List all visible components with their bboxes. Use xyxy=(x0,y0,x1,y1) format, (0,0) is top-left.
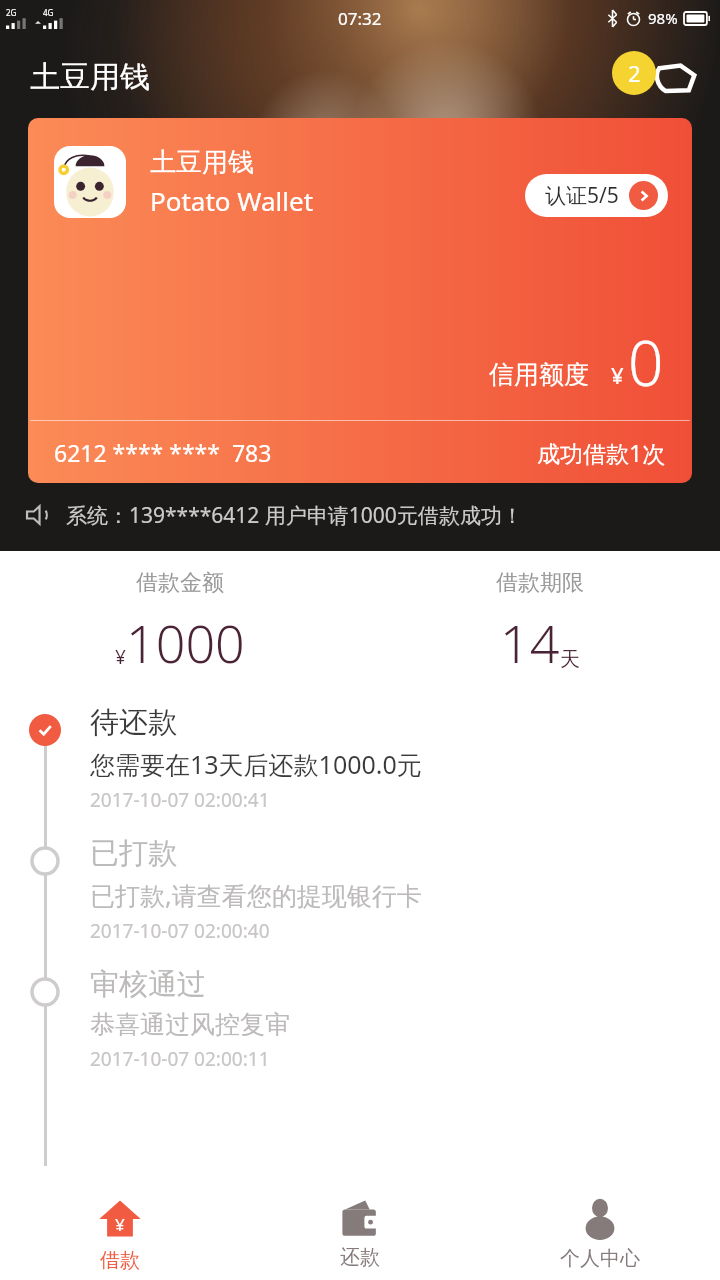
staticText: 2G xyxy=(6,7,17,18)
staticText: 2 xyxy=(628,58,641,88)
staticText: 恭喜通过风控复审 xyxy=(90,1009,290,1040)
staticText: 1000 xyxy=(126,607,245,678)
staticText: 天 xyxy=(560,647,580,672)
button[interactable]: 土豆用钱 xyxy=(28,118,692,483)
staticText: 还款 xyxy=(340,1245,380,1270)
staticText: 2017-10-07 02:00:41 xyxy=(90,787,270,813)
button[interactable]: Notifications xyxy=(612,48,698,106)
staticText: 您需要在13天后还款1000.0元 xyxy=(90,747,422,781)
staticText: 已打款 xyxy=(90,835,177,872)
staticText: 2017-10-07 02:00:40 xyxy=(90,918,270,944)
button[interactable]: 审核通过 xyxy=(0,966,720,1072)
button[interactable]: 个人中心 xyxy=(480,1188,720,1280)
staticText: 审核通过 xyxy=(90,966,206,1003)
staticText: 借款 xyxy=(100,1248,140,1273)
staticText: 07:32 xyxy=(338,7,382,30)
staticText: 信用额度 xyxy=(489,359,589,390)
staticText: 个人中心 xyxy=(560,1246,640,1271)
button[interactable]: 认证5/5 xyxy=(525,174,668,217)
button[interactable]: 已打款 xyxy=(0,835,720,944)
staticText: 借款金额 xyxy=(136,569,224,597)
button[interactable]: ¥ xyxy=(0,1188,240,1280)
staticText: 认证5/5 xyxy=(545,181,619,210)
staticText: 土豆用钱 xyxy=(30,58,150,96)
staticText: ¥ xyxy=(115,644,126,670)
staticText: 98% xyxy=(648,8,678,28)
button[interactable]: 还款 xyxy=(240,1188,480,1280)
staticText: ¥ xyxy=(115,1213,125,1236)
button[interactable]: 系统：139****6412 用户申请1000元借款成功！ xyxy=(0,491,720,539)
staticText: 0 xyxy=(628,320,664,404)
staticText: 4G xyxy=(43,7,54,18)
staticText: 待还款 xyxy=(90,704,177,741)
staticText: Potato Wallet xyxy=(150,183,314,218)
button[interactable]: 待还款 xyxy=(0,704,720,813)
staticText: 6212 **** **** 783 xyxy=(54,437,272,468)
staticText: 2017-10-07 02:00:11 xyxy=(90,1046,270,1072)
staticText: 14 xyxy=(500,607,560,678)
staticText: 借款期限 xyxy=(496,569,584,597)
staticText: 已打款,请查看您的提现银行卡 xyxy=(90,878,422,912)
staticText: ¥ xyxy=(611,360,624,390)
staticText: 成功借款1次 xyxy=(537,437,666,468)
staticText: 土豆用钱 xyxy=(150,146,254,179)
staticText: 系统：139****6412 用户申请1000元借款成功！ xyxy=(66,501,523,530)
